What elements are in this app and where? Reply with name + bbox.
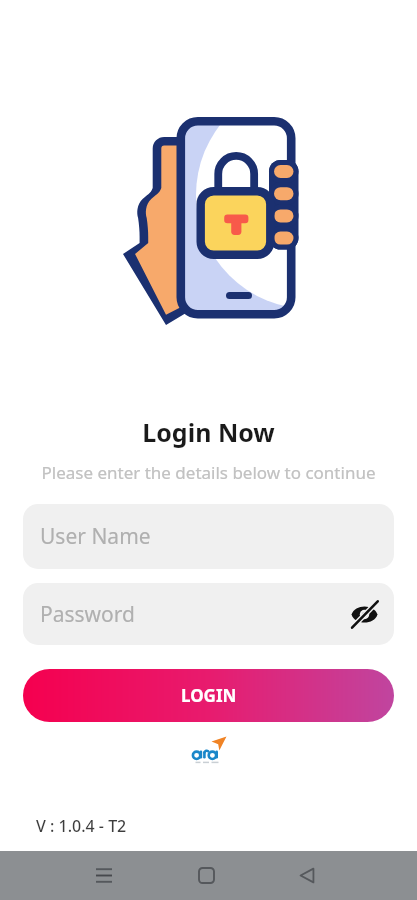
button[interactable]: Home — [176, 851, 236, 900]
button[interactable]: Show password — [347, 597, 381, 631]
staticText: Login Now — [0, 415, 417, 449]
staticText: V : 1.0.4 - T2 — [36, 815, 127, 837]
button[interactable]: LOGIN — [23, 669, 394, 722]
button[interactable]: Password — [23, 583, 394, 645]
staticText: Password — [40, 600, 135, 629]
staticText: Please enter the details below to contin… — [0, 461, 417, 484]
button[interactable]: Recent apps — [74, 851, 134, 900]
button[interactable]: User Name — [23, 504, 394, 569]
button[interactable]: Back — [277, 851, 337, 900]
staticText: LOGIN — [181, 684, 237, 707]
staticText: User Name — [40, 522, 151, 551]
